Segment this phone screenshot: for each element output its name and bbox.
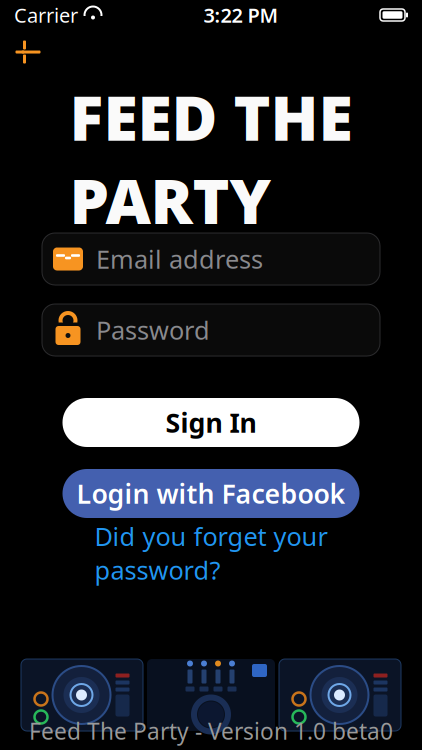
button[interactable]: Back bbox=[6, 35, 50, 69]
staticText: Feed The Party - Version 1.0 beta0 bbox=[29, 716, 393, 746]
staticText: Sign In bbox=[165, 405, 256, 440]
staticText: Password bbox=[96, 313, 210, 347]
button[interactable]: Did you forget your password? bbox=[62, 538, 359, 568]
staticText: Did you forget your password? bbox=[94, 519, 327, 587]
staticText: FEED THE PARTY bbox=[69, 75, 352, 241]
staticText: Email address bbox=[96, 242, 263, 276]
staticText: Login with Facebook bbox=[76, 476, 345, 511]
button[interactable]: Sign In bbox=[62, 398, 359, 447]
button[interactable]: Login with Facebook bbox=[62, 469, 359, 518]
staticText: 3:22 PM bbox=[203, 2, 278, 28]
staticText: Carrier bbox=[14, 2, 78, 28]
